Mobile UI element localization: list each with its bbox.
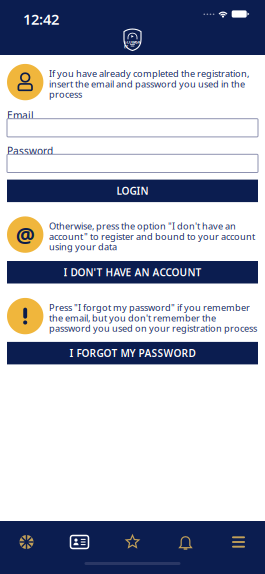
staticText: @ <box>16 220 35 249</box>
staticText: Password <box>7 144 53 158</box>
staticText: Otherwise, press the option "I don't hav… <box>49 221 255 252</box>
staticText: Email <box>7 108 34 122</box>
staticText: 12:42 <box>23 9 59 29</box>
button[interactable]: Games <box>0 525 53 559</box>
button[interactable]: Notifications <box>159 525 212 559</box>
button[interactable]: LOGIN <box>7 180 258 202</box>
button[interactable]: Menu <box>212 525 265 559</box>
button[interactable]: I DON'T HAVE AN ACCOUNT <box>7 261 258 283</box>
staticText: I DON'T HAVE AN ACCOUNT <box>63 265 201 279</box>
staticText: GLOBASKET <box>124 40 141 49</box>
staticText: If you have already completed the regist… <box>49 68 249 99</box>
staticText: I FORGOT MY PASSWORD <box>69 346 195 360</box>
button[interactable]: Profile <box>53 525 106 559</box>
button[interactable]: Favourites <box>106 525 159 559</box>
staticText: LOGIN <box>116 184 148 198</box>
button[interactable]: I FORGOT MY PASSWORD <box>7 342 258 364</box>
staticText: Press "I forgot my password" if you reme… <box>49 302 257 333</box>
